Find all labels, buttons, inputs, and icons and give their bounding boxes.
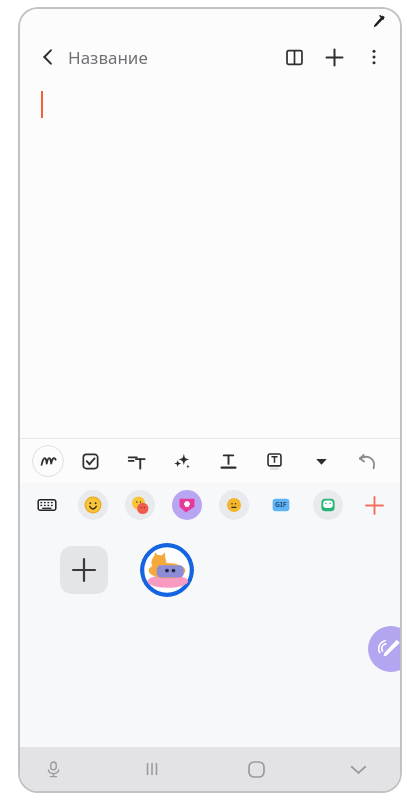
button[interactable]: Keyboard	[32, 490, 62, 520]
button[interactable]: Notebook	[274, 37, 314, 77]
button[interactable]: Compose with pen	[368, 626, 400, 672]
button[interactable]: More options	[354, 37, 394, 77]
button[interactable]: Undo	[348, 442, 386, 480]
button[interactable]: Text box	[255, 442, 293, 480]
button[interactable]: Emoticons	[219, 490, 249, 520]
button[interactable]: Add sticker pack	[360, 491, 388, 519]
button[interactable]: Stickers	[125, 490, 155, 520]
button[interactable]: Back	[28, 37, 68, 77]
button[interactable]: Hide keyboard	[338, 749, 378, 789]
button[interactable]: Text format	[209, 442, 247, 480]
button[interactable]: Cat sticker pack	[140, 543, 194, 597]
button[interactable]: Emoji	[78, 490, 108, 520]
button[interactable]: Add	[314, 37, 354, 77]
button[interactable]: Recents	[130, 747, 174, 791]
button[interactable]: Voice input	[36, 752, 70, 786]
button[interactable]: Home	[234, 747, 278, 791]
button[interactable]: Add sticker	[60, 546, 108, 594]
button[interactable]: Expand	[302, 442, 340, 480]
staticText: GIF	[275, 500, 287, 510]
button[interactable]: Avatar	[313, 490, 343, 520]
staticText: Название	[68, 46, 148, 69]
button[interactable]: GIF	[266, 490, 296, 520]
button[interactable]: Sticker pack	[172, 490, 202, 520]
button[interactable]: AI assist	[163, 442, 201, 480]
button[interactable]: Checklist	[71, 442, 109, 480]
button[interactable]: Handwriting	[32, 445, 64, 477]
button[interactable]: Paragraph style	[117, 442, 155, 480]
